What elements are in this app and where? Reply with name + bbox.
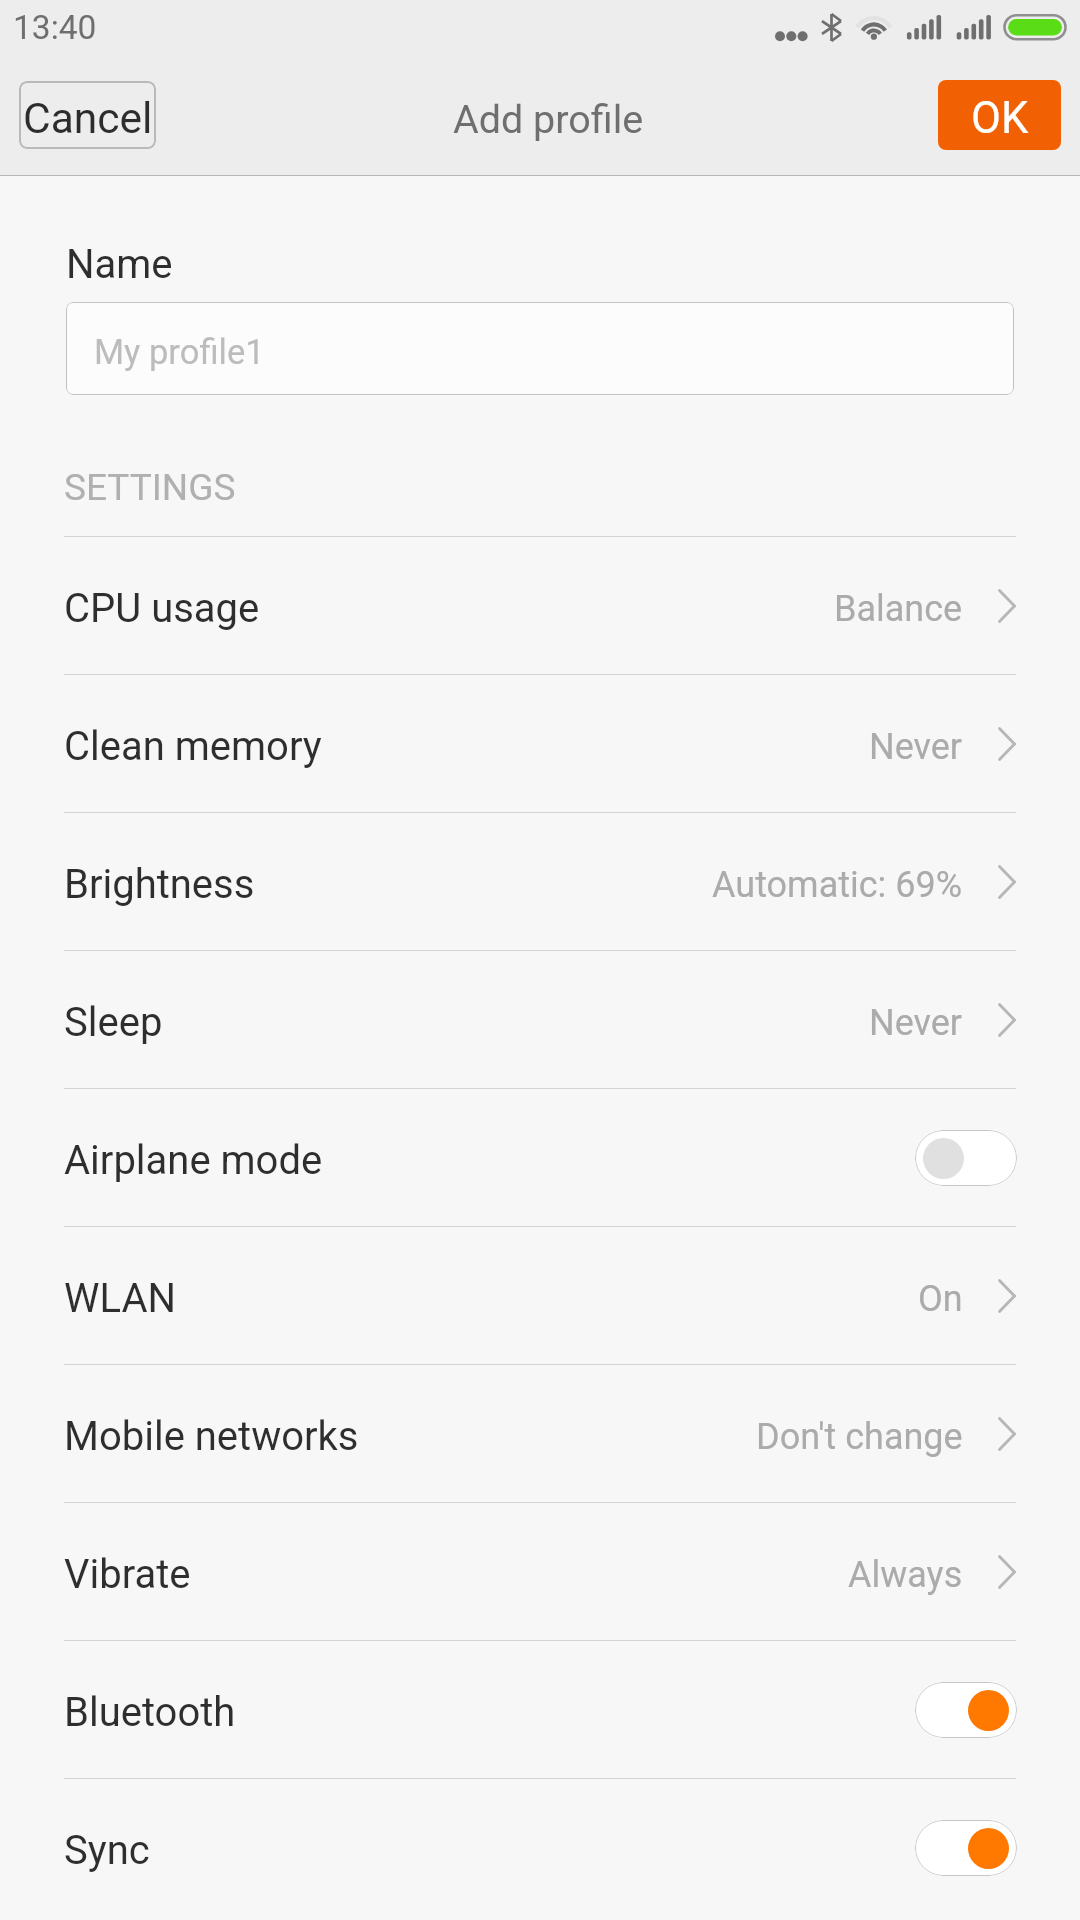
- staticText: Clean memory: [64, 723, 322, 770]
- staticText: Bluetooth: [64, 1689, 236, 1736]
- button[interactable]: Brightness: [0, 813, 1080, 950]
- staticText: Sleep: [64, 999, 163, 1046]
- button[interactable]: Clean memory: [0, 675, 1080, 812]
- button[interactable]: Mobile networks: [0, 1365, 1080, 1502]
- staticText: Sync: [64, 1827, 150, 1874]
- staticText: Cancel: [23, 94, 153, 144]
- button[interactable]: Toggle, on: [915, 1820, 1017, 1876]
- staticText: Mobile networks: [64, 1413, 359, 1460]
- button[interactable]: Sleep: [0, 951, 1080, 1088]
- staticText: Don't change: [756, 1416, 963, 1458]
- staticText: SETTINGS: [64, 466, 236, 509]
- button[interactable]: Toggle, on: [915, 1682, 1017, 1738]
- staticText: Automatic: 69%: [712, 864, 963, 906]
- staticText: Airplane mode: [64, 1137, 323, 1184]
- staticText: Name: [66, 241, 173, 288]
- staticText: My profile1: [94, 332, 265, 372]
- staticText: Add profile: [453, 96, 644, 142]
- staticText: Brightness: [64, 861, 255, 908]
- button[interactable]: Vibrate: [0, 1503, 1080, 1640]
- staticText: WLAN: [64, 1275, 177, 1322]
- button[interactable]: Airplane mode: [0, 1089, 1080, 1226]
- staticText: Balance: [834, 588, 963, 630]
- staticText: 13:40: [13, 8, 97, 47]
- button[interactable]: WLAN: [0, 1227, 1080, 1364]
- button[interactable]: Cancel: [19, 81, 156, 149]
- button[interactable]: Toggle, off: [915, 1130, 1017, 1186]
- staticText: Vibrate: [64, 1551, 191, 1598]
- staticText: Never: [869, 726, 963, 768]
- staticText: On: [918, 1278, 963, 1320]
- staticText: CPU usage: [64, 585, 260, 632]
- button[interactable]: CPU usage: [0, 537, 1080, 674]
- staticText: Always: [848, 1554, 963, 1596]
- button[interactable]: OK: [938, 80, 1061, 150]
- button[interactable]: Sync: [0, 1779, 1080, 1916]
- button[interactable]: Bluetooth: [0, 1641, 1080, 1778]
- staticText: Never: [869, 1002, 963, 1044]
- staticText: OK: [971, 93, 1029, 144]
- button[interactable]: My profile1: [66, 302, 1014, 395]
